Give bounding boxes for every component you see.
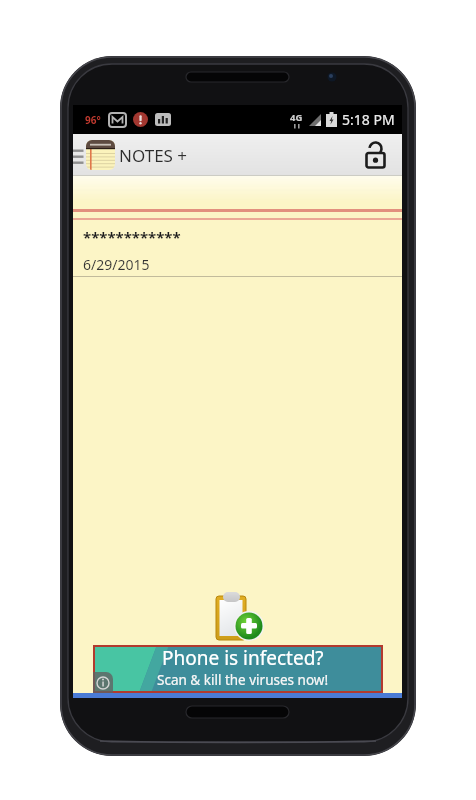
button[interactable]: ************ (73, 227, 402, 274)
staticText: Phone is infected? (162, 645, 324, 671)
button[interactable] (86, 140, 115, 170)
button[interactable] (365, 142, 387, 169)
staticText: Scan & kill the viruses now! (157, 671, 329, 689)
staticText: 5:18 PM (342, 110, 395, 129)
staticText: ************ (83, 227, 181, 247)
staticText: 4G (290, 111, 303, 124)
staticText: NOTES + (119, 144, 188, 167)
button[interactable] (93, 672, 113, 693)
button[interactable] (210, 590, 266, 644)
button[interactable]: Phone is infected? (93, 645, 383, 693)
staticText: 96° (85, 113, 101, 127)
staticText: 6/29/2015 (83, 255, 150, 274)
